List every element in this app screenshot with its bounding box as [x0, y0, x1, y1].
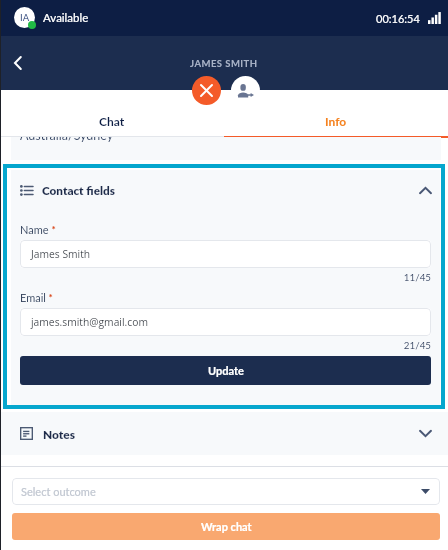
staticText: James Smith	[31, 247, 91, 261]
button[interactable]: Wrap chat	[12, 513, 440, 540]
staticText: IA	[20, 12, 30, 23]
staticText: 11/45	[20, 271, 431, 283]
button[interactable]: Info	[224, 90, 448, 137]
button[interactable]: Update	[20, 356, 431, 385]
staticText: 00:16:54	[376, 12, 420, 25]
button[interactable]: End chat	[192, 76, 221, 105]
staticText: Email	[20, 291, 46, 304]
staticText: Update	[208, 364, 244, 377]
button[interactable]: Chat	[0, 90, 224, 137]
staticText: Australia/Sydney	[20, 137, 114, 143]
staticText: Name	[20, 223, 49, 236]
staticText: 21/45	[20, 339, 431, 351]
button[interactable]: Back	[5, 50, 31, 76]
staticText: james.smith@gmail.com	[31, 315, 148, 329]
button[interactable]: Select outcome	[12, 478, 440, 505]
staticText: *	[46, 291, 53, 303]
staticText: Chat	[99, 114, 125, 128]
staticText: Contact fields	[42, 183, 115, 197]
staticText: Select outcome	[21, 485, 96, 498]
staticText: Notes	[43, 427, 76, 441]
staticText: Wrap chat	[201, 520, 252, 533]
button[interactable]: Transfer chat	[231, 76, 260, 105]
staticText: Info	[325, 114, 347, 128]
staticText: *	[49, 223, 56, 235]
button[interactable]: Notes	[20, 412, 431, 455]
staticText: Available	[43, 11, 89, 25]
button[interactable]: Contact fields	[20, 170, 431, 210]
staticText: JAMES SMITH	[190, 58, 258, 69]
